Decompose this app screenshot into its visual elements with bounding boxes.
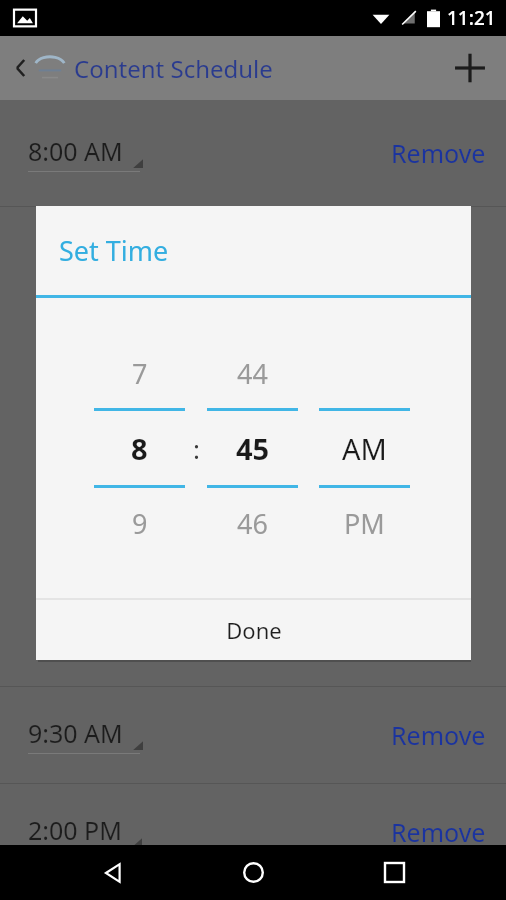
button[interactable]: 8:00 AM xyxy=(28,134,143,172)
staticText: PM xyxy=(344,505,385,542)
staticText: 11:21 xyxy=(447,5,496,31)
staticText: 46 xyxy=(237,505,268,542)
button[interactable]: Remove xyxy=(391,815,486,849)
button[interactable]: AM xyxy=(319,338,410,558)
staticText: : xyxy=(193,431,200,466)
staticText: 9 xyxy=(132,505,148,542)
staticText: 8:00 AM xyxy=(28,134,123,168)
staticText: 8 xyxy=(131,429,148,468)
button[interactable]: Remove xyxy=(391,136,486,170)
button[interactable]: Done xyxy=(36,600,471,660)
staticText: 7 xyxy=(132,355,148,392)
button[interactable]: Recents xyxy=(366,845,422,900)
button[interactable]: 9:30 AM xyxy=(28,716,143,754)
staticText: Set Time xyxy=(59,232,169,269)
staticText: 9:30 AM xyxy=(28,716,123,750)
button[interactable]: Back xyxy=(0,47,42,89)
button[interactable]: Home xyxy=(225,845,281,900)
staticText: Content Schedule xyxy=(74,52,273,85)
staticText: 2:00 PM xyxy=(28,813,122,847)
staticText: Done xyxy=(226,615,282,645)
staticText: Remove xyxy=(391,136,486,170)
button[interactable]: Remove xyxy=(391,718,486,752)
staticText: 45 xyxy=(236,429,270,468)
button[interactable]: 2:00 PM xyxy=(28,813,142,851)
button[interactable]: 44 xyxy=(207,338,298,558)
button[interactable]: 7 xyxy=(94,338,185,558)
staticText: Remove xyxy=(391,718,486,752)
staticText: Remove xyxy=(391,815,486,849)
staticText: 44 xyxy=(237,355,268,392)
button[interactable]: Back xyxy=(85,845,141,900)
staticText: AM xyxy=(342,429,387,468)
button[interactable]: Add xyxy=(444,42,496,94)
